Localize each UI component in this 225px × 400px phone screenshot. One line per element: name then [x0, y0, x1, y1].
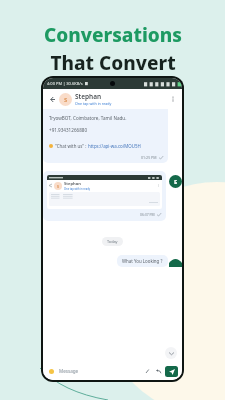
button[interactable]: S: [43, 171, 166, 221]
button[interactable]: TryowBOT, Coimbatore, Tamil Nadu.: [43, 109, 168, 163]
staticText: One tap with in ready: [75, 101, 112, 106]
staticText: Stephan: [75, 92, 102, 101]
staticText: https://api-wa.co/MOU5H: [88, 143, 141, 149]
staticText: Stephan: [64, 181, 81, 187]
staticText: +91.93431266880: [49, 127, 88, 133]
staticText: E: [174, 178, 178, 186]
staticText: Message: [59, 368, 143, 374]
button[interactable]: What You Looking ?: [117, 255, 168, 267]
button[interactable]: Back: [47, 94, 57, 104]
button[interactable]: Scroll to bottom: [165, 347, 177, 359]
button[interactable]: Send: [165, 366, 178, 377]
staticText: That Convert: [50, 50, 176, 76]
staticText: 4:00 PM | 30.6KB/s: [47, 81, 83, 86]
button[interactable]: Reply: [154, 367, 163, 376]
button[interactable]: More options: [168, 94, 178, 104]
staticText: 01:25 PM: [141, 155, 157, 160]
button[interactable]: Attach: [143, 367, 152, 376]
staticText: TryowBOT, Coimbatore, Tamil Nadu.: [49, 115, 127, 121]
staticText: 06:37 PM: [140, 212, 155, 217]
staticText: "Chat with us" :: [55, 143, 88, 149]
staticText: S: [64, 96, 68, 104]
staticText: Today: [107, 239, 118, 244]
staticText: What You Looking ?: [122, 258, 163, 264]
button[interactable]: Contact avatar: [169, 175, 182, 188]
button[interactable]: Emoji: [47, 367, 55, 375]
staticText: S: [57, 184, 59, 189]
staticText: Conversations: [44, 22, 182, 48]
staticText: One tap with in ready: [64, 187, 91, 191]
